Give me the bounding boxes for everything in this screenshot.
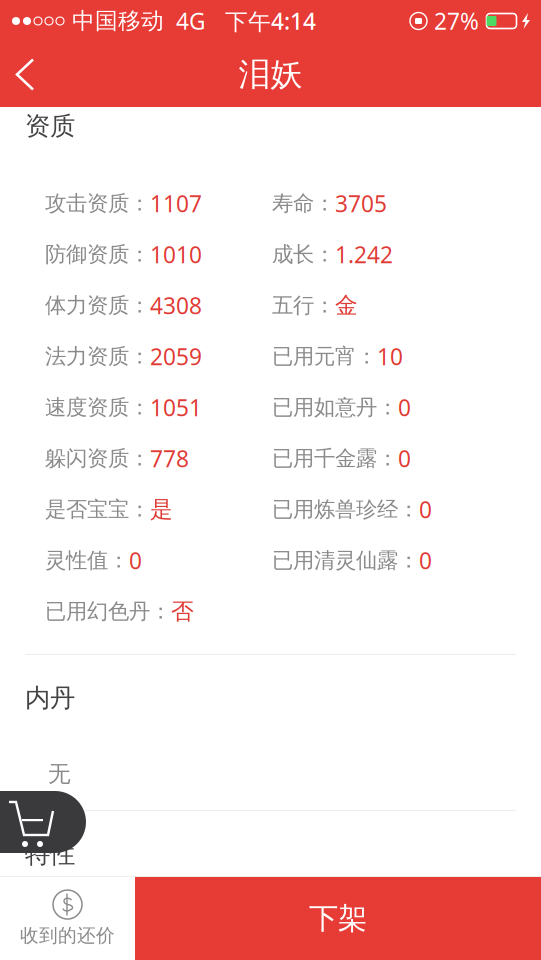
staticText: 金 — [335, 292, 358, 319]
staticText: 无 — [48, 760, 71, 788]
staticText: 速度资质： — [45, 394, 150, 421]
staticText: 0 — [398, 443, 411, 473]
staticText: 资质 — [25, 110, 75, 141]
staticText: 防御资质： — [45, 241, 150, 268]
staticText: 3705 — [335, 188, 387, 218]
staticText: 已用清灵仙露： — [272, 547, 419, 574]
button[interactable]: 收到的还价 — [0, 877, 135, 960]
button[interactable]: Cart — [0, 791, 86, 853]
staticText: 0 — [419, 545, 432, 575]
staticText: 0 — [129, 545, 142, 575]
staticText: 内丹 — [25, 682, 75, 713]
staticText: 1.242 — [335, 239, 393, 269]
staticText: 2059 — [150, 341, 202, 371]
staticText: 27% — [434, 6, 479, 36]
staticText: 五行： — [272, 292, 335, 319]
staticText: 778 — [150, 443, 189, 473]
button[interactable]: Back — [0, 51, 50, 97]
staticText: 已用如意丹： — [272, 394, 398, 421]
staticText: 10 — [377, 341, 403, 371]
staticText: 法力资质： — [45, 343, 150, 370]
staticText: 灵性值： — [45, 547, 129, 574]
staticText: 已用元宵： — [272, 343, 377, 370]
staticText: 4G — [176, 6, 206, 36]
staticText: 是 — [150, 496, 173, 523]
staticText: 已用幻色丹： — [45, 598, 171, 625]
staticText: 1107 — [150, 188, 202, 218]
staticText: 中国移动 — [72, 7, 164, 35]
staticText: 寿命： — [272, 190, 335, 217]
staticText: 下午4:14 — [225, 6, 316, 36]
staticText: 否 — [171, 598, 194, 625]
staticText: 躲闪资质： — [45, 445, 150, 472]
staticText: 1051 — [150, 392, 202, 422]
staticText: 收到的还价 — [20, 924, 115, 947]
staticText: 1010 — [150, 239, 202, 269]
staticText: 是否宝宝： — [45, 496, 150, 523]
staticText: 下架 — [309, 900, 367, 936]
staticText: 0 — [398, 392, 411, 422]
staticText: 泪妖 — [238, 55, 302, 94]
staticText: 已用千金露： — [272, 445, 398, 472]
staticText: 4308 — [150, 290, 202, 320]
staticText: 特性 — [25, 838, 75, 869]
staticText: 0 — [419, 494, 432, 524]
staticText: 攻击资质： — [45, 190, 150, 217]
staticText: 已用炼兽珍经： — [272, 496, 419, 523]
staticText: 成长： — [272, 241, 335, 268]
button[interactable]: 下架 — [135, 877, 541, 960]
staticText: 体力资质： — [45, 292, 150, 319]
